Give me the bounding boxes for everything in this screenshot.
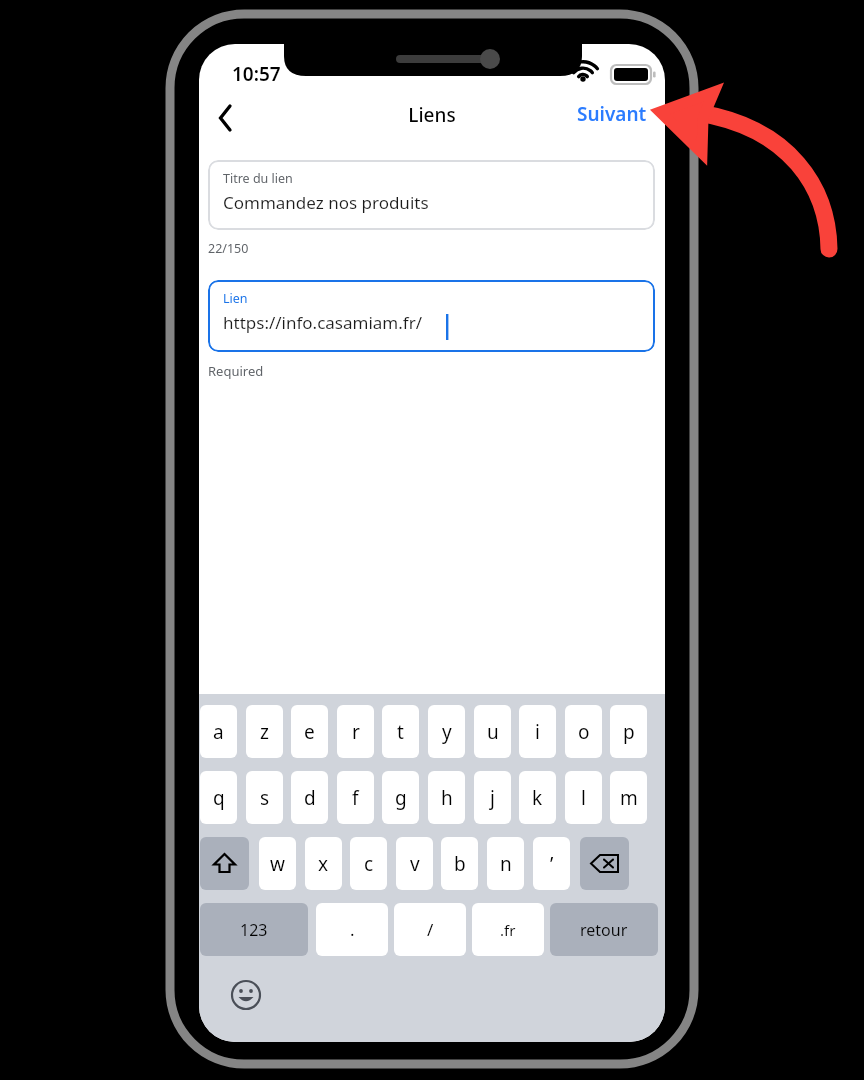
button[interactable]: j xyxy=(474,771,511,824)
staticText: r xyxy=(352,719,360,745)
button[interactable]: q xyxy=(200,771,237,824)
staticText: .fr xyxy=(500,920,516,940)
button[interactable]: s xyxy=(246,771,283,824)
button[interactable]: 123 xyxy=(200,903,308,956)
staticText: . xyxy=(350,918,355,941)
button[interactable]: c xyxy=(350,837,387,890)
staticText: a xyxy=(213,719,224,745)
staticText: f xyxy=(352,785,359,811)
staticText: 10:57 xyxy=(232,61,281,87)
staticText: c xyxy=(364,851,374,877)
staticText: h xyxy=(441,785,453,811)
button[interactable]: retour xyxy=(550,903,658,956)
button[interactable]: z xyxy=(246,705,283,758)
staticText: j xyxy=(490,785,495,811)
staticText: ’ xyxy=(550,851,554,877)
staticText: 123 xyxy=(240,919,268,941)
staticText: t xyxy=(397,719,404,745)
staticText: z xyxy=(260,719,269,745)
button[interactable]: ’ xyxy=(533,837,570,890)
staticText: Required xyxy=(208,362,264,380)
staticText: g xyxy=(395,785,407,811)
button[interactable]: b xyxy=(441,837,478,890)
button[interactable]: w xyxy=(259,837,296,890)
button[interactable]: i xyxy=(519,705,556,758)
staticText: Liens xyxy=(199,102,665,128)
button[interactable]: l xyxy=(565,771,602,824)
staticText: p xyxy=(623,719,635,745)
button[interactable]: .fr xyxy=(472,903,544,956)
staticText: 22/150 xyxy=(208,240,249,257)
staticText: o xyxy=(578,719,590,745)
button[interactable]: Backspace xyxy=(580,837,629,890)
button[interactable]: n xyxy=(487,837,524,890)
button[interactable]: . xyxy=(316,903,388,956)
button[interactable]: o xyxy=(565,705,602,758)
staticText: Suivant xyxy=(577,101,647,127)
button[interactable]: a xyxy=(200,705,237,758)
staticText: / xyxy=(427,918,434,941)
staticText: q xyxy=(213,785,225,811)
button[interactable]: t xyxy=(382,705,419,758)
staticText: s xyxy=(260,785,270,811)
staticText: w xyxy=(270,851,285,877)
staticText: d xyxy=(304,785,316,811)
button[interactable]: f xyxy=(337,771,374,824)
staticText: Commandez nos produits xyxy=(223,191,429,214)
button[interactable]: v xyxy=(396,837,433,890)
button[interactable]: Back xyxy=(203,92,249,136)
staticText: l xyxy=(581,785,586,811)
button[interactable]: Lien xyxy=(208,280,655,352)
button[interactable]: Shift xyxy=(200,837,249,890)
staticText: Titre du lien xyxy=(223,170,293,187)
staticText: n xyxy=(500,851,512,877)
button[interactable]: / xyxy=(394,903,466,956)
button[interactable]: h xyxy=(428,771,465,824)
button[interactable]: Suivant xyxy=(577,92,665,136)
button[interactable]: e xyxy=(291,705,328,758)
staticText: i xyxy=(535,719,540,745)
button[interactable]: m xyxy=(610,771,647,824)
button[interactable]: p xyxy=(610,705,647,758)
staticText: e xyxy=(304,719,315,745)
button[interactable]: u xyxy=(474,705,511,758)
staticText: Lien xyxy=(223,290,248,307)
staticText: y xyxy=(442,719,452,745)
button[interactable]: Titre du lien xyxy=(208,160,655,230)
staticText: https://info.casamiam.fr/ xyxy=(223,311,423,334)
button[interactable]: g xyxy=(382,771,419,824)
staticText: k xyxy=(532,785,543,811)
staticText: b xyxy=(454,851,466,877)
button[interactable]: k xyxy=(519,771,556,824)
button[interactable]: x xyxy=(305,837,342,890)
staticText: x xyxy=(318,851,329,877)
staticText: m xyxy=(620,785,638,811)
button[interactable]: y xyxy=(428,705,465,758)
staticText: retour xyxy=(580,919,628,941)
button[interactable]: r xyxy=(337,705,374,758)
staticText: v xyxy=(410,851,420,877)
button[interactable]: d xyxy=(291,771,328,824)
button[interactable]: Emoji xyxy=(229,978,263,1012)
staticText: u xyxy=(487,719,499,745)
